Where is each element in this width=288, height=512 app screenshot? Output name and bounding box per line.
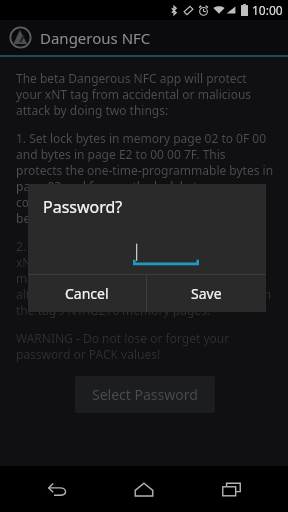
- staticText: Select Password: [92, 385, 198, 404]
- button[interactable]: Save: [147, 275, 266, 312]
- button[interactable]: Select Password: [75, 376, 215, 413]
- staticText: 2. Set a password and PACK value on your…: [16, 238, 274, 318]
- staticText: 1. Set lock bytes in memory page 02 to 0…: [16, 130, 274, 226]
- button[interactable]: Recents: [202, 466, 260, 512]
- staticText: Password?: [43, 196, 123, 218]
- staticText: 10:00: [252, 2, 283, 18]
- staticText: The beta Dangerous NFC app will protect …: [16, 70, 274, 118]
- staticText: Cancel: [65, 284, 109, 303]
- button[interactable]: Home: [115, 466, 173, 512]
- staticText: WARNING - Do not lose or forget your pas…: [16, 330, 274, 362]
- staticText: Save: [191, 284, 222, 303]
- staticText: Dangerous NFC: [40, 28, 151, 48]
- button[interactable]: Cancel: [28, 275, 146, 312]
- button[interactable]: Back: [29, 466, 87, 512]
- button[interactable]: Password field: [133, 241, 199, 267]
